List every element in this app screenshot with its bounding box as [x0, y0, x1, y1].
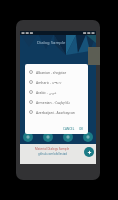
staticText: Armenian - Հայերեն	[36, 100, 70, 105]
button[interactable]: OK	[77, 126, 86, 132]
button[interactable]: Albanian - shqiptar	[25, 67, 88, 77]
button[interactable]: List	[43, 132, 53, 142]
button[interactable]: Custom	[63, 132, 73, 142]
button[interactable]: Amharic - አማርኛ	[25, 77, 88, 87]
staticText: OK	[79, 127, 84, 131]
staticText: Azerbaijani - Azərbaycan	[36, 110, 75, 115]
staticText: Arabic - عربى	[36, 90, 57, 95]
staticText: Dialog Sample	[37, 40, 66, 46]
button[interactable]: Armenian - Հայերեն	[25, 97, 88, 107]
button[interactable]: Alert	[23, 132, 33, 142]
button[interactable]: CANCEL	[61, 126, 77, 132]
button[interactable]: Add	[84, 147, 94, 157]
button[interactable]: Progress	[83, 132, 93, 142]
staticText: Amharic - አማርኛ	[36, 80, 62, 85]
button[interactable]: Azerbaijani - Azərbaycan	[25, 107, 88, 117]
button[interactable]: Arabic - عربى	[25, 87, 88, 97]
staticText: CANCEL	[63, 127, 75, 131]
staticText: github.com/afollestad	[38, 152, 67, 156]
staticText: Material Dialogs Sample	[35, 147, 70, 151]
staticText: Albanian - shqiptar	[36, 70, 67, 75]
